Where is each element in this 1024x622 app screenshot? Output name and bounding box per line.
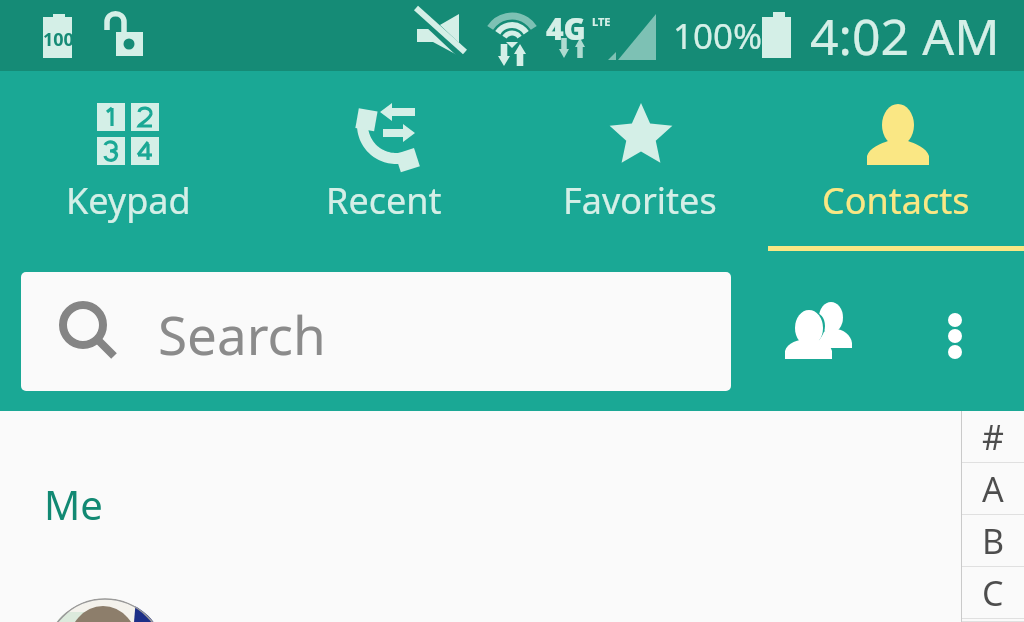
- staticText: C: [982, 570, 1004, 616]
- button[interactable]: Groups: [784, 301, 854, 371]
- staticText: #: [982, 414, 1004, 460]
- staticText: A: [982, 466, 1004, 512]
- staticText: 4G: [546, 8, 586, 49]
- button[interactable]: D: [962, 619, 1024, 622]
- staticText: 100: [43, 27, 74, 52]
- button[interactable]: Favorites: [512, 71, 768, 251]
- button[interactable]: B: [962, 515, 1024, 567]
- staticText: Contacts: [822, 176, 970, 225]
- button[interactable]: Search: [21, 272, 731, 391]
- staticText: B: [982, 518, 1005, 564]
- button[interactable]: #: [962, 411, 1024, 463]
- staticText: D: [981, 619, 1006, 622]
- button[interactable]: A: [962, 463, 1024, 515]
- staticText: Search: [158, 298, 326, 370]
- button[interactable]: C: [962, 567, 1024, 619]
- staticText: Recent: [326, 176, 442, 225]
- button[interactable]: Recent: [256, 71, 512, 251]
- staticText: 100%: [673, 12, 763, 60]
- button[interactable]: [44, 598, 166, 622]
- staticText: Favorites: [563, 176, 717, 225]
- staticText: Me: [44, 477, 103, 531]
- staticText: 4:02 AM: [810, 2, 1000, 70]
- button[interactable]: Keypad: [0, 71, 256, 251]
- button[interactable]: Contacts: [768, 71, 1024, 251]
- staticText: LTE: [592, 14, 611, 29]
- button[interactable]: More options: [920, 301, 990, 371]
- staticText: Keypad: [66, 176, 191, 225]
